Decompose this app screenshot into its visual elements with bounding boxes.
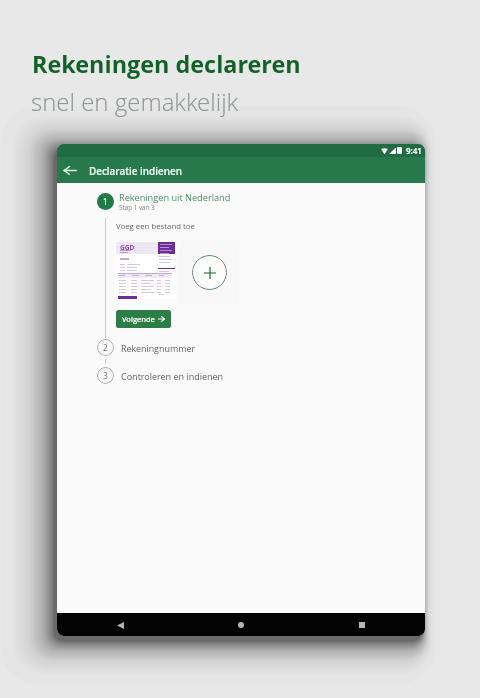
staticText: Rekeningnummer — [121, 342, 196, 354]
button[interactable]: Bestand toevoegen — [179, 241, 239, 304]
button[interactable]: Factuur — [115, 241, 176, 299]
button[interactable]: Terug — [57, 157, 82, 183]
staticText: Stap 1 van 3 — [119, 203, 155, 212]
staticText: Volgende — [122, 314, 155, 324]
button[interactable]: 3 — [97, 367, 224, 384]
button[interactable]: Home — [230, 614, 252, 636]
staticText: Controleren en indienen — [121, 370, 224, 382]
button[interactable]: Volgende — [116, 310, 171, 328]
staticText: Declaratie indienen — [89, 164, 182, 177]
staticText: Voeg een bestand toe — [116, 221, 195, 232]
staticText: Rekeningen declareren — [32, 48, 301, 80]
staticText: Rekeningen uit Nederland — [119, 191, 231, 204]
staticText: snel en gemakkelijk — [31, 85, 239, 118]
staticText: GGD — [120, 243, 135, 252]
staticText: 2 — [103, 342, 108, 354]
button[interactable]: Recents — [351, 614, 373, 636]
staticText: 3 — [103, 370, 108, 382]
staticText: 1 — [103, 196, 108, 208]
button[interactable]: 2 — [97, 339, 196, 356]
staticText: 9:41 — [406, 145, 422, 156]
button[interactable]: Back — [109, 614, 131, 636]
